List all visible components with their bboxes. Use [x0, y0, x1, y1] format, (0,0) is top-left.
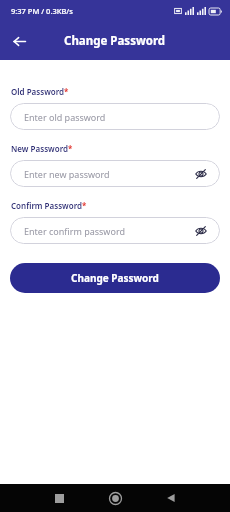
staticText: New Password*	[11, 143, 73, 154]
staticText: Old Password*	[11, 86, 69, 97]
staticText: Enter new password	[24, 168, 110, 180]
button[interactable]: Enter old password	[10, 103, 220, 130]
button[interactable]: Toggle password visibility	[192, 222, 210, 240]
staticText: Change Password	[71, 271, 159, 285]
button[interactable]: Enter new password	[10, 160, 220, 187]
button[interactable]: Recent apps	[48, 487, 70, 509]
staticText: Change Password	[64, 33, 166, 49]
button[interactable]: Home	[104, 487, 126, 509]
button[interactable]: Back	[7, 29, 31, 53]
staticText: Confirm Password*	[11, 200, 87, 211]
button[interactable]: Toggle password visibility	[192, 165, 210, 183]
button[interactable]: Back	[160, 487, 182, 509]
button[interactable]: Change Password	[10, 263, 220, 293]
staticText: Enter confirm password	[24, 225, 125, 237]
staticText: 9:37 PM / 0.3KB/s	[11, 6, 73, 16]
button[interactable]: Enter confirm password	[10, 217, 220, 244]
staticText: Enter old password	[24, 111, 106, 123]
